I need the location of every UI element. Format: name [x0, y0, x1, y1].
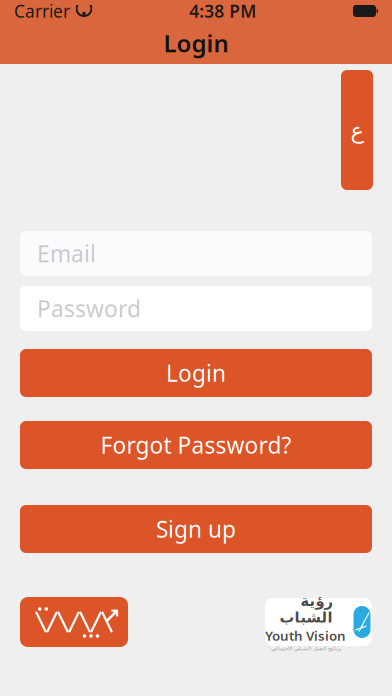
button[interactable]: Youth Vision	[265, 598, 372, 646]
staticText: Sign up	[156, 514, 236, 544]
staticText: Login	[166, 358, 226, 388]
staticText: ع	[350, 117, 364, 143]
staticText: Youth Vision	[265, 627, 346, 644]
staticText: 4:38 PM	[189, 0, 256, 22]
button[interactable]: Sign up	[20, 505, 372, 553]
staticText: ↗	[103, 604, 121, 628]
staticText: برنامج العمل الشبابي الاجتماعي	[270, 645, 340, 652]
staticText: رؤية الشباب	[279, 592, 332, 626]
staticText: Login	[163, 27, 228, 59]
button[interactable]: Password	[20, 286, 372, 331]
staticText: Carrier	[14, 0, 70, 22]
staticText: Forgot Password?	[100, 430, 291, 460]
button[interactable]: Email	[20, 231, 372, 276]
staticText: Password	[37, 293, 141, 323]
button[interactable]: Forgot Password?	[20, 421, 372, 469]
button[interactable]: Login	[20, 349, 372, 397]
button[interactable]: Company logo	[20, 597, 128, 647]
button[interactable]: Switch language to Arabic	[341, 70, 373, 190]
staticText: Email	[37, 238, 96, 268]
